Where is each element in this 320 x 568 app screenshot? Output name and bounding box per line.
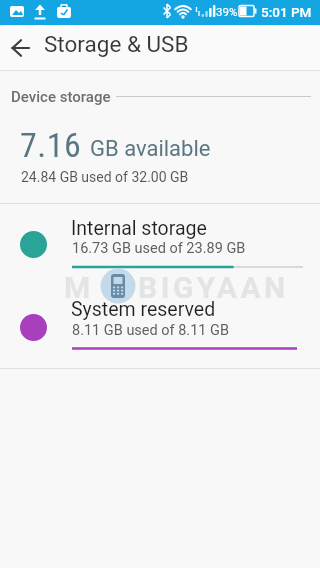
button[interactable]: [4, 31, 38, 65]
staticText: Device storage: [11, 88, 111, 106]
staticText: M: [64, 270, 91, 305]
staticText: Storage & USB: [44, 31, 189, 57]
staticText: 8.11 GB used of 8.11 GB: [72, 322, 230, 339]
staticText: GB available: [90, 136, 211, 162]
staticText: System reserved: [71, 298, 216, 321]
staticText: Internal storage: [71, 217, 207, 240]
staticText: 7.16: [20, 125, 82, 165]
button[interactable]: [0, 286, 320, 363]
staticText: 5:01 PM: [261, 4, 312, 20]
staticText: 39%: [216, 5, 238, 18]
staticText: 24.84 GB used of 32.00 GB: [21, 169, 189, 185]
staticText: BIGYAAN: [138, 270, 289, 305]
staticText: 16.73 GB used of 23.89 GB: [72, 240, 246, 257]
button[interactable]: [0, 205, 320, 282]
